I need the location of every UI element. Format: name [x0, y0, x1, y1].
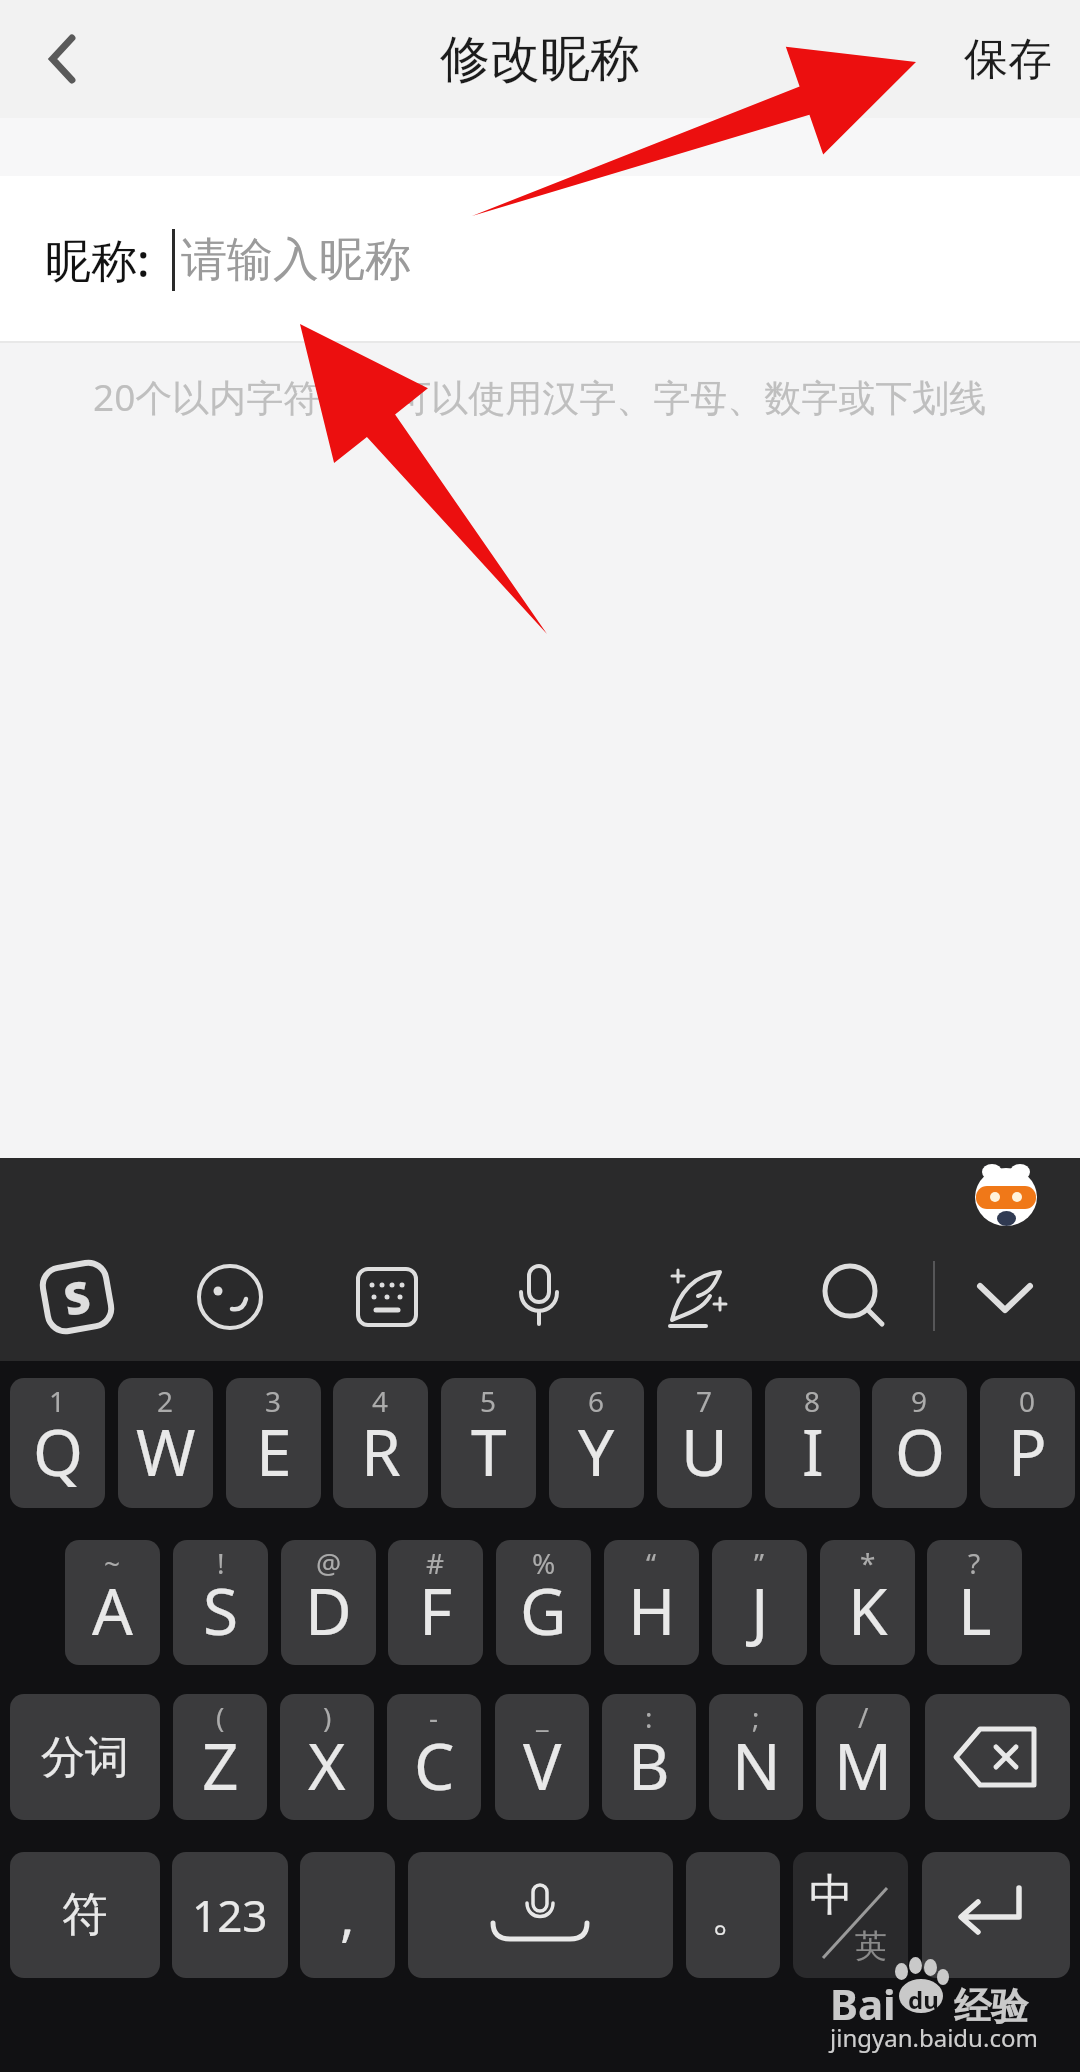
button[interactable]: _: [495, 1694, 589, 1820]
button[interactable]: ;: [709, 1694, 803, 1820]
staticText: S: [203, 1567, 239, 1654]
button[interactable]: #: [388, 1540, 483, 1665]
button[interactable]: ,: [300, 1852, 395, 1978]
staticText: du: [908, 1983, 939, 2016]
button[interactable]: 。: [686, 1852, 780, 1978]
staticText: 分词: [41, 1730, 129, 1785]
staticText: ~: [104, 1544, 121, 1582]
staticText: 123: [192, 1885, 268, 1945]
staticText: O: [895, 1408, 945, 1495]
staticText: S: [59, 1265, 95, 1329]
staticText: Q: [33, 1408, 83, 1495]
button[interactable]: 6: [549, 1378, 644, 1508]
staticText: ?: [968, 1544, 981, 1582]
button[interactable]: *: [820, 1540, 915, 1665]
staticText: C: [414, 1722, 455, 1809]
staticText: #: [426, 1544, 445, 1582]
staticText: 7: [696, 1382, 713, 1420]
staticText: I: [802, 1408, 824, 1495]
staticText: B: [628, 1722, 670, 1809]
button[interactable]: [922, 1852, 1070, 1978]
button[interactable]: [352, 1262, 422, 1332]
staticText: %: [532, 1544, 556, 1582]
staticText: W: [136, 1408, 196, 1495]
staticText: 英: [855, 1926, 887, 1966]
button[interactable]: [974, 1164, 1038, 1226]
button[interactable]: %: [496, 1540, 591, 1665]
staticText: 5: [480, 1382, 497, 1420]
button[interactable]: ”: [712, 1540, 807, 1665]
staticText: 符: [62, 1886, 108, 1944]
button[interactable]: 0: [980, 1378, 1075, 1508]
button[interactable]: [504, 1262, 574, 1332]
button[interactable]: /: [816, 1694, 910, 1820]
staticText: 保存: [964, 32, 1052, 87]
button[interactable]: 9: [872, 1378, 967, 1508]
staticText: 0: [1019, 1382, 1036, 1420]
button[interactable]: [195, 1262, 265, 1332]
staticText: *: [860, 1544, 876, 1582]
staticText: G: [520, 1567, 567, 1654]
button[interactable]: 保存: [964, 32, 1052, 87]
button[interactable]: ?: [927, 1540, 1022, 1665]
staticText: ): [323, 1698, 332, 1736]
button[interactable]: ~: [65, 1540, 160, 1665]
button[interactable]: 8: [765, 1378, 860, 1508]
staticText: ”: [754, 1544, 765, 1582]
staticText: 2: [157, 1382, 174, 1420]
staticText: jingyan.baidu.com: [830, 2021, 1038, 2054]
button[interactable]: -: [387, 1694, 481, 1820]
button[interactable]: 5: [441, 1378, 536, 1508]
staticText: N: [732, 1722, 781, 1809]
button[interactable]: [662, 1262, 732, 1332]
button[interactable]: @: [281, 1540, 376, 1665]
staticText: D: [305, 1567, 352, 1654]
button[interactable]: 符: [10, 1852, 160, 1978]
button[interactable]: :: [602, 1694, 696, 1820]
button[interactable]: 昵称:: [0, 176, 1080, 343]
button[interactable]: 中: [793, 1852, 908, 1978]
staticText: 1: [49, 1382, 66, 1420]
button[interactable]: 4: [333, 1378, 428, 1508]
staticText: -: [429, 1698, 439, 1736]
staticText: 昵称:: [45, 228, 150, 291]
staticText: 20个以内字符，仅可以使用汉字、字母、数字或下划线: [93, 371, 987, 422]
staticText: E: [256, 1408, 292, 1495]
staticText: Bai: [830, 1975, 896, 2032]
staticText: T: [471, 1408, 507, 1495]
button[interactable]: [925, 1694, 1070, 1820]
staticText: !: [217, 1544, 225, 1582]
button[interactable]: (: [173, 1694, 267, 1820]
button[interactable]: S: [36, 1256, 118, 1338]
button[interactable]: “: [604, 1540, 699, 1665]
staticText: 4: [372, 1382, 389, 1420]
staticText: A: [92, 1567, 133, 1654]
staticText: (: [216, 1698, 225, 1736]
button[interactable]: ): [280, 1694, 374, 1820]
button[interactable]: 3: [226, 1378, 321, 1508]
staticText: @: [316, 1544, 342, 1582]
button[interactable]: [36, 31, 92, 87]
staticText: 中: [809, 1868, 853, 1923]
button[interactable]: [819, 1262, 889, 1332]
staticText: P: [1008, 1408, 1047, 1495]
button[interactable]: 2: [118, 1378, 213, 1508]
staticText: J: [751, 1567, 769, 1654]
button[interactable]: 7: [657, 1378, 752, 1508]
staticText: 请输入昵称: [181, 231, 411, 289]
button[interactable]: [408, 1852, 673, 1978]
button[interactable]: [970, 1262, 1040, 1332]
staticText: _: [536, 1698, 549, 1736]
button[interactable]: 分词: [10, 1694, 160, 1820]
staticText: M: [834, 1722, 893, 1809]
staticText: U: [681, 1408, 728, 1495]
staticText: 修改昵称: [440, 28, 640, 91]
staticText: H: [628, 1567, 676, 1654]
staticText: ,: [340, 1878, 355, 1952]
button[interactable]: !: [173, 1540, 268, 1665]
button[interactable]: 1: [10, 1378, 105, 1508]
staticText: V: [523, 1722, 562, 1809]
staticText: 3: [265, 1382, 282, 1420]
button[interactable]: 123: [172, 1852, 288, 1978]
staticText: 经验: [954, 1983, 1028, 2030]
